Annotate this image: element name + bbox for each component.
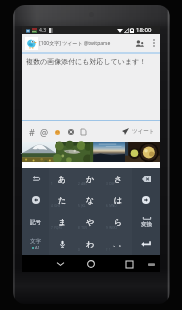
button[interactable]: Hashtag	[25, 123, 38, 141]
staticText: や	[86, 217, 95, 227]
staticText: 6 MNO	[106, 204, 117, 208]
staticText: は	[114, 195, 123, 205]
button[interactable]: 変換	[132, 211, 160, 233]
staticText: ツイート	[132, 128, 155, 135]
staticText: か	[86, 174, 95, 184]
button[interactable]: Clear	[64, 123, 77, 141]
button[interactable]: key10	[22, 189, 49, 211]
staticText: 4 GHI	[51, 204, 60, 208]
button[interactable]: Photo 4	[125, 142, 160, 162]
button[interactable]: 、。	[104, 233, 132, 255]
staticText: 3 DEF	[106, 182, 115, 186]
button[interactable]: ら	[104, 211, 132, 233]
button[interactable]: わ	[76, 233, 104, 255]
button[interactable]: Recent apps	[122, 257, 136, 271]
staticText: [100文字] ツイート @twitparse	[39, 40, 111, 47]
button[interactable]: key14	[132, 189, 160, 211]
staticText: 記号	[30, 219, 41, 226]
button[interactable]: Photo 1	[22, 142, 56, 162]
staticText: 9 WXYZ	[106, 226, 118, 230]
button[interactable]: Mention	[38, 123, 51, 141]
button[interactable]: ま	[49, 211, 76, 233]
button[interactable]: Switch keyboard	[144, 257, 158, 271]
button[interactable]: や	[76, 211, 104, 233]
staticText: 5 JKL	[78, 204, 86, 208]
button[interactable]: た	[49, 189, 76, 211]
button[interactable]: さ	[104, 168, 132, 189]
staticText: 18:00	[136, 26, 152, 34]
button[interactable]: か	[76, 168, 104, 189]
button[interactable]: Emoji	[51, 123, 64, 141]
staticText: わ	[86, 239, 95, 249]
button[interactable]: は	[104, 189, 132, 211]
button[interactable]: key04	[132, 168, 160, 189]
button[interactable]: Hide keyboard	[53, 257, 67, 271]
staticText: 、。	[113, 241, 124, 248]
button[interactable]: key34	[132, 233, 160, 255]
staticText: 1	[51, 182, 53, 186]
button[interactable]: Add people	[131, 34, 147, 52]
staticText: 2 ABC	[78, 182, 88, 186]
staticText: さ	[114, 174, 123, 184]
button[interactable]: Attach file	[77, 123, 90, 141]
button[interactable]: あ	[49, 168, 76, 189]
staticText: 4.3	[39, 27, 47, 34]
button[interactable]: key00	[22, 168, 49, 189]
staticText: 0	[78, 248, 80, 252]
staticText: な	[86, 195, 95, 205]
button[interactable]: More options	[147, 34, 160, 52]
staticText: 変換	[141, 221, 152, 228]
button[interactable]: ツイート	[122, 128, 155, 135]
button[interactable]: key31	[49, 233, 76, 255]
button[interactable]: Photo 2	[56, 142, 90, 162]
staticText: あ	[58, 174, 67, 184]
staticText: ? !	[106, 248, 110, 252]
button[interactable]: Photo 3	[90, 142, 125, 162]
staticText: 複数の画像添付にも対応しています！	[26, 57, 147, 66]
button[interactable]: Home	[84, 257, 98, 271]
staticText: ら	[114, 217, 123, 227]
button[interactable]: な	[76, 189, 104, 211]
staticText: 文字	[30, 238, 41, 245]
staticText: A1	[35, 245, 40, 250]
button[interactable]: key30	[22, 233, 49, 255]
staticText: た	[58, 195, 67, 205]
staticText: @	[40, 126, 49, 138]
staticText: ま	[58, 217, 67, 227]
staticText: 8 TUV	[78, 226, 87, 230]
staticText: 7 PQRS	[51, 226, 62, 230]
staticText: #	[29, 126, 35, 138]
button[interactable]: 記号	[22, 211, 49, 233]
